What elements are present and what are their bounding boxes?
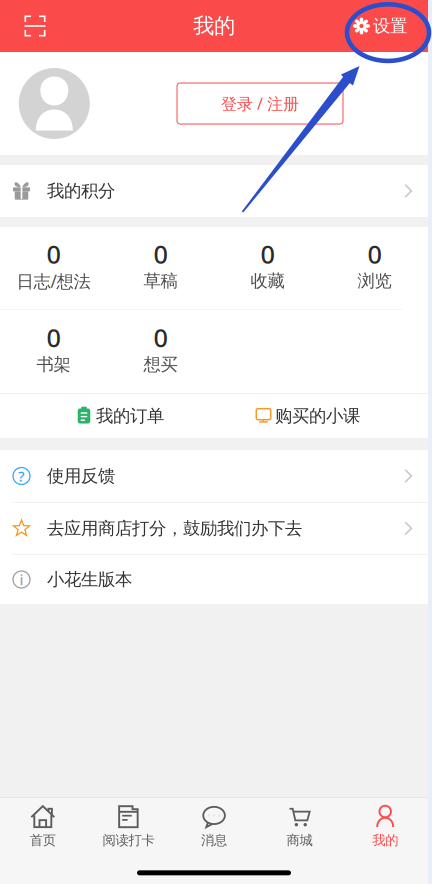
button[interactable]: 0 bbox=[107, 310, 214, 393]
staticText: 收藏 bbox=[250, 270, 284, 292]
staticText: 我的订单 bbox=[96, 405, 164, 427]
staticText: 消息 bbox=[201, 832, 227, 848]
button[interactable]: 首页 bbox=[0, 798, 86, 855]
button[interactable]: i bbox=[0, 555, 428, 604]
button[interactable]: 登录 / 注册 bbox=[177, 83, 343, 124]
staticText: 0 bbox=[46, 237, 60, 271]
staticText: 日志/想法 bbox=[16, 269, 90, 292]
staticText: 0 bbox=[153, 237, 167, 271]
staticText: 0 bbox=[153, 321, 167, 354]
button[interactable]: Scan bbox=[13, 4, 57, 48]
staticText: 设置 bbox=[373, 15, 407, 37]
staticText: 我的积分 bbox=[47, 180, 115, 202]
button[interactable]: 去应用商店打分，鼓励我们办下去 bbox=[0, 503, 428, 554]
button[interactable]: 阅读打卡 bbox=[86, 798, 171, 855]
staticText: 草稿 bbox=[143, 270, 177, 292]
staticText: 登录 / 注册 bbox=[221, 93, 299, 114]
button[interactable]: 0 bbox=[321, 227, 428, 309]
staticText: 书架 bbox=[36, 354, 70, 375]
staticText: 首页 bbox=[30, 832, 56, 848]
staticText: 想买 bbox=[143, 354, 177, 375]
button[interactable]: 消息 bbox=[171, 798, 257, 855]
staticText: 阅读打卡 bbox=[102, 832, 154, 848]
staticText: 去应用商店打分，鼓励我们办下去 bbox=[47, 518, 302, 539]
staticText: i bbox=[19, 570, 23, 589]
button[interactable]: 0 bbox=[214, 227, 321, 309]
staticText: 我的 bbox=[372, 832, 398, 848]
staticText: 0 bbox=[46, 321, 60, 354]
staticText: ? bbox=[18, 466, 25, 486]
button[interactable]: 购买的小课 bbox=[164, 394, 428, 438]
button[interactable]: ? bbox=[0, 450, 428, 502]
staticText: 浏览 bbox=[357, 270, 391, 292]
staticText: 0 bbox=[367, 237, 381, 271]
button[interactable]: 商城 bbox=[257, 798, 342, 855]
button[interactable]: 0 bbox=[0, 227, 107, 309]
staticText: 使用反馈 bbox=[47, 465, 115, 487]
staticText: 商城 bbox=[287, 832, 313, 848]
staticText: 我的 bbox=[193, 13, 235, 39]
button[interactable]: 设置 bbox=[343, 2, 415, 50]
button[interactable]: 我的订单 bbox=[0, 394, 164, 438]
button[interactable]: 我的 bbox=[342, 798, 428, 855]
staticText: 0 bbox=[260, 237, 274, 271]
button[interactable]: 0 bbox=[107, 227, 214, 309]
staticText: 购买的小课 bbox=[275, 405, 360, 427]
button[interactable]: 我的积分 bbox=[0, 165, 428, 217]
button[interactable]: 0 bbox=[0, 310, 107, 393]
staticText: 小花生版本 bbox=[47, 569, 132, 590]
